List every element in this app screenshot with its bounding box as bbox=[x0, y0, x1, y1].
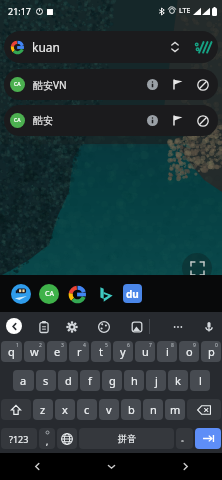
button[interactable]: Back bbox=[0, 453, 74, 480]
button[interactable]: k bbox=[168, 370, 188, 391]
button[interactable]: kuan bbox=[4, 31, 218, 63]
staticText: z bbox=[40, 402, 46, 417]
staticText: 5 bbox=[105, 342, 108, 349]
button[interactable]: Home bbox=[74, 453, 148, 480]
staticText: x bbox=[62, 402, 68, 417]
button[interactable]: Baidu bbox=[123, 284, 142, 303]
staticText: y bbox=[120, 344, 126, 359]
staticText: u bbox=[142, 344, 149, 359]
button[interactable]: Report bbox=[169, 76, 186, 93]
staticText: v bbox=[106, 402, 112, 417]
button[interactable]: Block bbox=[194, 76, 211, 93]
button[interactable]: u bbox=[135, 341, 155, 362]
button[interactable]: Google bbox=[67, 284, 87, 304]
button[interactable]: y bbox=[113, 341, 133, 362]
staticText: q bbox=[8, 344, 15, 359]
button[interactable]: c bbox=[77, 399, 97, 420]
button[interactable]: Bing bbox=[95, 284, 115, 304]
button[interactable]: a bbox=[13, 370, 34, 391]
staticText: r bbox=[77, 344, 82, 359]
button[interactable]: q bbox=[1, 341, 22, 362]
button[interactable]: t bbox=[91, 341, 111, 362]
button[interactable]: Expand search bbox=[166, 38, 184, 56]
button[interactable]: Block bbox=[194, 112, 211, 129]
button[interactable]: r bbox=[69, 341, 89, 362]
button[interactable]: Enter bbox=[195, 428, 221, 449]
staticText: 酷安 bbox=[33, 114, 53, 127]
button[interactable]: Backspace bbox=[187, 399, 221, 420]
button[interactable]: i bbox=[157, 341, 177, 362]
staticText: 7 bbox=[149, 342, 152, 349]
staticText: 6 bbox=[127, 342, 130, 349]
button[interactable]: d bbox=[58, 370, 78, 391]
button[interactable]: Messaging app bbox=[11, 284, 31, 304]
button[interactable]: s bbox=[36, 370, 56, 391]
staticText: 拼音 bbox=[118, 433, 136, 444]
staticText: g bbox=[109, 373, 116, 388]
staticText: a bbox=[20, 373, 27, 388]
button[interactable]: Report bbox=[169, 112, 186, 129]
staticText: 0 bbox=[215, 342, 218, 349]
button[interactable]: More options bbox=[169, 318, 187, 336]
button[interactable]: g bbox=[102, 370, 122, 391]
button[interactable]: 拼音 bbox=[79, 428, 174, 449]
button[interactable]: Info bbox=[144, 76, 161, 93]
staticText: LTE bbox=[179, 6, 191, 16]
staticText: du bbox=[126, 287, 139, 301]
button[interactable]: Search assistant bbox=[192, 37, 212, 57]
button[interactable]: Stickers bbox=[128, 318, 146, 336]
button[interactable]: v bbox=[99, 399, 119, 420]
staticText: b bbox=[128, 402, 135, 417]
staticText: j bbox=[155, 373, 158, 388]
button[interactable]: f bbox=[80, 370, 100, 391]
staticText: k bbox=[175, 373, 181, 388]
button[interactable]: Screenshot bbox=[182, 253, 212, 283]
button[interactable]: Coolapk bbox=[39, 284, 59, 304]
button[interactable]: j bbox=[146, 370, 166, 391]
staticText: 8 bbox=[171, 342, 174, 349]
button[interactable]: p bbox=[201, 341, 221, 362]
staticText: 1 bbox=[16, 342, 19, 349]
staticText: e bbox=[54, 344, 61, 359]
button[interactable]: e bbox=[47, 341, 67, 362]
staticText: 3 bbox=[61, 342, 64, 349]
staticText: 酷安VN bbox=[33, 78, 67, 92]
button[interactable]: m bbox=[165, 399, 185, 420]
button[interactable]: z bbox=[33, 399, 53, 420]
button[interactable]: Recent apps bbox=[148, 453, 222, 480]
button[interactable]: CA bbox=[4, 69, 218, 100]
button[interactable]: ?123 bbox=[1, 428, 37, 449]
button[interactable]: Back bbox=[6, 318, 22, 334]
button[interactable]: w bbox=[24, 341, 45, 362]
button[interactable]: b bbox=[121, 399, 141, 420]
staticText: 2 bbox=[39, 342, 42, 349]
button[interactable]: l bbox=[190, 370, 210, 391]
button[interactable]: x bbox=[55, 399, 75, 420]
button[interactable]: Period bbox=[176, 428, 193, 449]
button[interactable]: Theme bbox=[95, 318, 113, 336]
button[interactable]: Info bbox=[144, 112, 161, 129]
button[interactable]: Change language bbox=[57, 428, 77, 449]
button[interactable]: Shift bbox=[1, 399, 31, 420]
staticText: d bbox=[65, 373, 72, 388]
staticText: p bbox=[208, 344, 215, 359]
staticText: CA bbox=[45, 289, 54, 299]
staticText: 4 bbox=[83, 342, 86, 349]
button[interactable]: Clipboard bbox=[35, 318, 53, 336]
staticText: kuan bbox=[32, 39, 60, 55]
button[interactable]: n bbox=[143, 399, 163, 420]
button[interactable]: CA bbox=[4, 105, 218, 136]
button[interactable]: Settings bbox=[63, 318, 81, 336]
staticText: CA bbox=[14, 117, 21, 124]
button[interactable]: o bbox=[179, 341, 199, 362]
button[interactable]: Comma bbox=[39, 428, 55, 449]
staticText: t bbox=[99, 344, 103, 359]
staticText: , bbox=[46, 436, 49, 447]
staticText: 21:17 bbox=[8, 5, 32, 17]
button[interactable]: h bbox=[124, 370, 144, 391]
button[interactable]: Voice input bbox=[200, 318, 218, 336]
staticText: CA bbox=[14, 81, 21, 88]
staticText: m bbox=[170, 402, 181, 417]
staticText: ?123 bbox=[9, 433, 29, 445]
staticText: n bbox=[150, 402, 157, 417]
